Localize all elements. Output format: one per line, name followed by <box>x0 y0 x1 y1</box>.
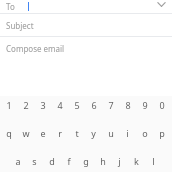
button[interactable]: 5 <box>68 97 85 113</box>
button[interactable]: o <box>136 125 153 141</box>
staticText: d <box>49 155 55 167</box>
button[interactable]: g <box>77 153 94 169</box>
staticText: y <box>91 127 96 139</box>
button[interactable]: 2 <box>17 97 34 113</box>
button[interactable]: 7 <box>102 97 119 113</box>
staticText: r <box>58 127 62 139</box>
button[interactable]: d <box>43 153 60 169</box>
button[interactable]: h <box>94 153 111 169</box>
button[interactable]: e <box>34 125 51 141</box>
button[interactable]: p <box>153 125 170 141</box>
button[interactable]: a <box>9 153 26 169</box>
button[interactable]: Compose email <box>0 37 172 59</box>
button[interactable]: q <box>0 125 17 141</box>
staticText: j <box>118 155 121 167</box>
staticText: 9 <box>142 99 148 111</box>
staticText: f <box>67 155 71 167</box>
button[interactable]: k <box>128 153 145 169</box>
staticText: Subject <box>6 20 34 31</box>
staticText: 3 <box>40 99 46 111</box>
button[interactable]: To <box>0 0 172 13</box>
staticText: l <box>152 155 155 167</box>
staticText: i <box>126 127 129 139</box>
staticText: k <box>134 155 139 167</box>
staticText: h <box>100 155 106 167</box>
button[interactable]: w <box>17 125 34 141</box>
staticText: g <box>83 155 89 167</box>
button[interactable]: i <box>119 125 136 141</box>
button[interactable]: 9 <box>136 97 153 113</box>
button[interactable]: 6 <box>85 97 102 113</box>
button[interactable]: y <box>85 125 102 141</box>
staticText: 1 <box>6 99 12 111</box>
staticText: o <box>142 127 148 139</box>
staticText: w <box>22 127 30 139</box>
staticText: s <box>32 155 37 167</box>
staticText: To <box>6 1 15 12</box>
staticText: 5 <box>74 99 80 111</box>
staticText: p <box>159 127 165 139</box>
button[interactable]: u <box>102 125 119 141</box>
button[interactable]: j <box>111 153 128 169</box>
button[interactable]: Subject <box>0 14 172 36</box>
staticText: a <box>15 155 21 167</box>
button[interactable]: 0 <box>153 97 170 113</box>
button[interactable]: 8 <box>119 97 136 113</box>
button[interactable]: s <box>26 153 43 169</box>
staticText: 8 <box>125 99 131 111</box>
staticText: 7 <box>108 99 114 111</box>
staticText: 0 <box>159 99 165 111</box>
button[interactable]: l <box>145 153 162 169</box>
staticText: u <box>108 127 114 139</box>
staticText: Compose email <box>6 43 65 54</box>
staticText: 4 <box>57 99 63 111</box>
button[interactable]: 4 <box>51 97 68 113</box>
staticText: 2 <box>23 99 29 111</box>
button[interactable]: r <box>51 125 68 141</box>
staticText: q <box>6 127 12 139</box>
button[interactable]: 1 <box>0 97 17 113</box>
staticText: 6 <box>91 99 97 111</box>
button[interactable]: f <box>60 153 77 169</box>
button[interactable]: t <box>68 125 85 141</box>
staticText: t <box>75 127 79 139</box>
button[interactable]: Show recipient fields <box>155 0 168 11</box>
staticText: e <box>40 127 46 139</box>
button[interactable]: 3 <box>34 97 51 113</box>
